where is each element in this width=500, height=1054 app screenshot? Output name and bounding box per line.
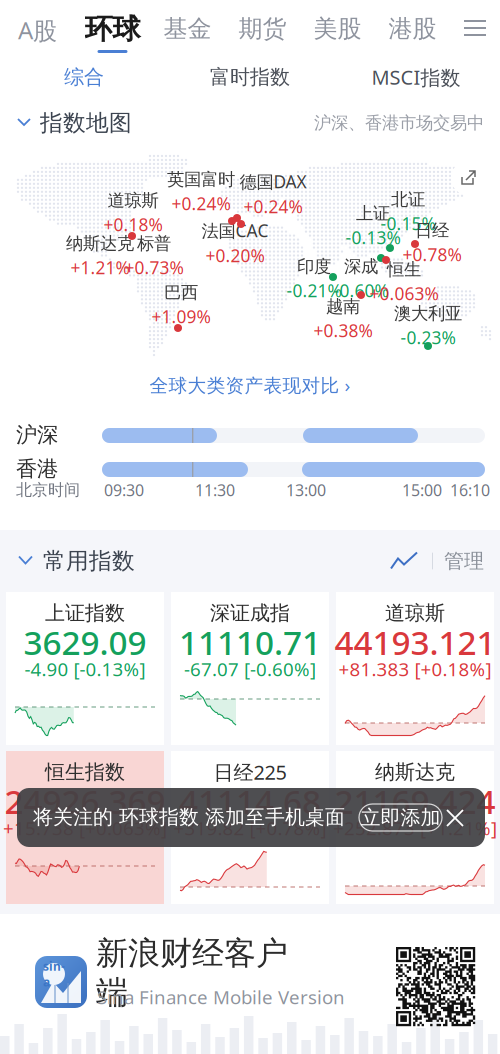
staticText: -0.15% bbox=[380, 212, 435, 235]
staticText: 日经 bbox=[415, 220, 449, 241]
staticText: 纳斯达克 bbox=[66, 233, 134, 254]
button[interactable]: 富时指数 bbox=[167, 58, 333, 96]
staticText: 15:00 bbox=[402, 479, 442, 501]
staticText: 香港 bbox=[16, 456, 58, 482]
staticText: -0.60% bbox=[333, 279, 388, 302]
staticText: 新浪财经客户端 bbox=[96, 934, 288, 1012]
staticText: +0.20% bbox=[205, 244, 264, 267]
staticText: +319.82 [+0.78%] bbox=[173, 816, 326, 840]
button[interactable]: 纳斯达克 bbox=[336, 751, 494, 904]
staticText: 富时指数 bbox=[210, 65, 290, 89]
button[interactable]: 恒生指数 bbox=[6, 751, 164, 904]
staticText: Sina Finance Mobile Version bbox=[97, 985, 345, 1009]
button[interactable]: Chart bbox=[387, 548, 421, 574]
staticText: 上证 bbox=[356, 203, 390, 224]
staticText: 道琼斯 bbox=[385, 601, 445, 625]
button[interactable]: 综合 bbox=[1, 58, 167, 96]
button[interactable]: 日经225 bbox=[171, 751, 329, 904]
staticText: 深成 bbox=[344, 256, 378, 277]
staticText: 44193.121 bbox=[334, 620, 495, 664]
staticText: 13:00 bbox=[286, 479, 326, 501]
staticText: 恒生指数 bbox=[45, 760, 125, 784]
staticText: 巴西 bbox=[164, 282, 198, 303]
staticText: 澳大利亚 bbox=[394, 303, 462, 324]
button[interactable]: Expand map bbox=[448, 158, 488, 198]
staticText: 纳斯达克 bbox=[375, 760, 455, 784]
button[interactable]: 上证指数 bbox=[6, 592, 164, 745]
staticText: 全球大类资产表现对比 › bbox=[149, 373, 350, 397]
staticText: -0.21% bbox=[286, 279, 341, 302]
staticText: 11110.71 bbox=[179, 620, 321, 664]
staticText: 24926.369 bbox=[4, 779, 165, 823]
staticText: 港股 bbox=[388, 14, 436, 43]
staticText: 英国富时 bbox=[167, 169, 235, 190]
staticText: 09:30 bbox=[104, 479, 144, 501]
staticText: +0.78% bbox=[402, 243, 461, 266]
staticText: 深证成指 bbox=[210, 601, 290, 625]
staticText: +1.09% bbox=[151, 305, 210, 328]
staticText: 法国CAC bbox=[201, 219, 268, 242]
staticText: 16:10 bbox=[450, 479, 490, 501]
button[interactable]: 港股 bbox=[375, 0, 450, 58]
staticText: -67.07 [-0.60%] bbox=[184, 657, 316, 681]
staticText: 上证指数 bbox=[45, 601, 125, 625]
staticText: 道琼斯 bbox=[107, 190, 158, 211]
staticText: 美股 bbox=[313, 14, 361, 43]
staticText: 标普 bbox=[137, 233, 171, 254]
button[interactable]: Dismiss bbox=[435, 798, 475, 838]
staticText: -0.13% bbox=[345, 226, 400, 249]
button[interactable]: 立即添加 bbox=[359, 804, 442, 831]
staticText: 德国DAX bbox=[239, 170, 306, 193]
staticText: +0.18% bbox=[103, 213, 162, 236]
staticText: 3629.09 bbox=[23, 620, 146, 664]
staticText: 41114.68 bbox=[179, 779, 321, 823]
staticText: 基金 bbox=[163, 14, 211, 43]
staticText: 日经225 bbox=[213, 759, 286, 785]
staticText: sina bbox=[43, 958, 65, 990]
button[interactable]: 道琼斯 bbox=[336, 592, 494, 745]
button[interactable]: 环球 bbox=[75, 0, 150, 58]
staticText: 管理 bbox=[444, 549, 484, 573]
staticText: 11:30 bbox=[195, 479, 235, 501]
staticText: 越南 bbox=[326, 296, 360, 317]
button[interactable]: 基金 bbox=[150, 0, 225, 58]
staticText: +15.738 [+0.063%] bbox=[3, 816, 167, 840]
staticText: 沪深、香港市场交易中 bbox=[314, 112, 484, 134]
staticText: +81.383 [+0.18%] bbox=[338, 657, 491, 681]
staticText: +1.21% bbox=[70, 256, 129, 279]
staticText: 指数地图 bbox=[40, 109, 132, 137]
staticText: MSCI指数 bbox=[371, 64, 460, 90]
staticText: 环球 bbox=[84, 12, 140, 46]
staticText: +0.38% bbox=[313, 319, 372, 342]
button[interactable]: A股 bbox=[0, 0, 75, 58]
button[interactable]: 美股 bbox=[300, 0, 375, 58]
staticText: +0.73% bbox=[124, 256, 183, 279]
staticText: 常用指数 bbox=[43, 547, 135, 575]
staticText: -4.90 [-0.13%] bbox=[24, 657, 145, 681]
staticText: +0.063% bbox=[369, 282, 438, 305]
staticText: +252.873 [+1.21%] bbox=[333, 816, 497, 840]
staticText: 将关注的 环球指数 添加至手机桌面 bbox=[33, 805, 345, 829]
button[interactable]: 全球大类资产表现对比 › bbox=[149, 373, 350, 397]
staticText: 印度 bbox=[297, 256, 331, 277]
staticText: 北京时间 bbox=[16, 480, 80, 500]
button[interactable]: 期货 bbox=[225, 0, 300, 58]
staticText: 立即添加 bbox=[360, 805, 440, 830]
button[interactable]: MSCI指数 bbox=[333, 58, 499, 96]
staticText: +0.24% bbox=[243, 195, 302, 218]
staticText: +0.24% bbox=[171, 192, 230, 215]
staticText: 期货 bbox=[238, 14, 286, 43]
staticText: 沪深 bbox=[16, 422, 58, 448]
staticText: 综合 bbox=[64, 65, 104, 89]
staticText: 北证 bbox=[391, 189, 425, 210]
button[interactable]: 管理 bbox=[444, 549, 500, 573]
staticText: 恒生 bbox=[387, 259, 421, 280]
button[interactable]: Menu bbox=[450, 0, 500, 58]
staticText: 21169.424 bbox=[334, 779, 495, 823]
staticText: -0.23% bbox=[400, 326, 455, 349]
staticText: A股 bbox=[18, 14, 57, 46]
button[interactable]: 深证成指 bbox=[171, 592, 329, 745]
